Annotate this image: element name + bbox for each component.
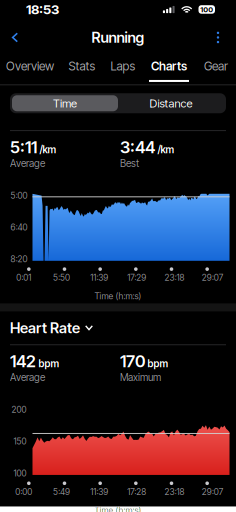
staticText: Time (h:m:s) [94,291,141,301]
button[interactable]: Overview [4,52,56,84]
button[interactable]: Heart Rate [0,311,236,344]
staticText: Time (h:m:s) [94,505,141,512]
staticText: Best [120,157,139,169]
staticText: 6:40 [10,222,27,233]
staticText: Heart Rate [10,319,80,337]
staticText: 11:39 [90,487,108,497]
staticText: Overview [6,59,54,73]
staticText: Time [53,96,77,110]
staticText: 23:18 [164,487,184,497]
staticText: 5:50 [53,272,70,283]
staticText: Running [91,29,144,46]
staticText: Maximum [120,371,161,383]
staticText: 11:39 [90,272,108,283]
staticText: Distance [149,96,192,110]
button[interactable]: Back [3,24,27,50]
staticText: bpm [147,358,168,370]
staticText: 5:00 [10,190,27,201]
staticText: 18:53 [26,1,59,17]
staticText: 170 [120,351,145,371]
button[interactable]: Distance [118,95,224,111]
staticText: 29:07 [202,272,223,283]
button[interactable]: Stats [66,52,98,84]
staticText: /km [39,143,56,156]
staticText: bpm [38,358,59,370]
staticText: Charts [151,59,187,73]
staticText: 0:01 [16,272,31,283]
staticText: 17:29 [127,272,146,283]
staticText: /km [157,143,174,156]
staticText: 150 [13,436,26,447]
button[interactable]: Time [12,95,118,111]
staticText: Average [10,157,45,169]
staticText: 5:49 [53,487,70,497]
staticText: 0:00 [15,487,32,497]
staticText: 100 [200,5,213,14]
staticText: 5:11 [10,137,37,157]
button[interactable]: Charts [148,52,190,84]
staticText: 17:28 [127,487,146,497]
staticText: 100 [13,468,26,478]
button[interactable]: More options [206,24,230,50]
staticText: Gear [204,59,228,73]
staticText: 23:18 [164,272,184,283]
staticText: 3:44 [120,137,155,157]
staticText: 29:07 [202,487,223,497]
staticText: 8:20 [10,254,27,264]
button[interactable]: Laps [108,52,138,84]
staticText: 142 [10,351,36,371]
staticText: Stats [68,59,95,73]
button[interactable]: Gear [200,52,232,84]
staticText: Average [10,371,45,383]
staticText: Laps [110,59,135,73]
staticText: 200 [11,404,26,415]
